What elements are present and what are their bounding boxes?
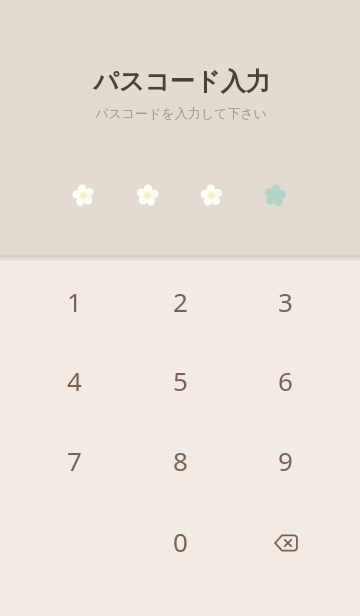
staticText: 0 — [173, 524, 188, 559]
staticText: パスコードを入力して下さい — [95, 105, 267, 121]
staticText: パスコード入力 — [93, 66, 271, 97]
staticText: 6 — [278, 363, 293, 398]
staticText: 5 — [173, 363, 188, 398]
button[interactable]: 9 — [248, 423, 322, 497]
staticText: 9 — [278, 443, 293, 478]
staticText: 4 — [67, 363, 82, 398]
staticText: 8 — [173, 443, 188, 478]
button[interactable]: Delete — [248, 506, 322, 580]
button[interactable]: 4 — [37, 343, 111, 417]
button[interactable]: 2 — [143, 264, 217, 338]
staticText: 1 — [67, 284, 82, 319]
button[interactable]: 6 — [248, 343, 322, 417]
button[interactable]: 1 — [37, 264, 111, 338]
button[interactable]: 5 — [143, 343, 217, 417]
button[interactable]: 8 — [143, 423, 217, 497]
button[interactable]: 7 — [37, 423, 111, 497]
staticText: 2 — [173, 284, 188, 319]
staticText: 3 — [278, 284, 293, 319]
button[interactable]: 0 — [143, 504, 217, 578]
staticText: 7 — [67, 443, 82, 478]
button[interactable]: 3 — [248, 264, 322, 338]
